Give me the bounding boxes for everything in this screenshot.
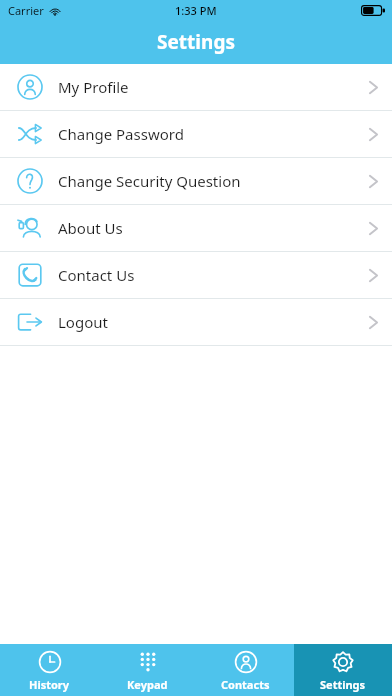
- button[interactable]: Settings: [294, 644, 392, 696]
- button[interactable]: Logout: [0, 299, 392, 345]
- button[interactable]: Contacts: [196, 644, 294, 696]
- staticText: Change Security Question: [58, 171, 241, 191]
- staticText: My Profile: [58, 77, 129, 97]
- button[interactable]: History: [0, 644, 98, 696]
- button[interactable]: Keypad: [98, 644, 196, 696]
- staticText: Settings: [157, 29, 235, 55]
- button[interactable]: Contact Us: [0, 252, 392, 298]
- staticText: Keypad: [127, 677, 168, 692]
- staticText: 1:33 PM: [175, 3, 217, 18]
- staticText: About Us: [58, 218, 123, 238]
- staticText: History: [29, 677, 70, 692]
- staticText: Contact Us: [58, 265, 135, 285]
- staticText: Carrier: [8, 3, 44, 18]
- staticText: Change Password: [58, 124, 184, 144]
- button[interactable]: Change Security Question: [0, 158, 392, 204]
- button[interactable]: My Profile: [0, 64, 392, 110]
- button[interactable]: About Us: [0, 205, 392, 251]
- staticText: Logout: [58, 312, 108, 332]
- button[interactable]: Change Password: [0, 111, 392, 157]
- staticText: Contacts: [221, 677, 270, 692]
- staticText: Settings: [320, 677, 366, 692]
